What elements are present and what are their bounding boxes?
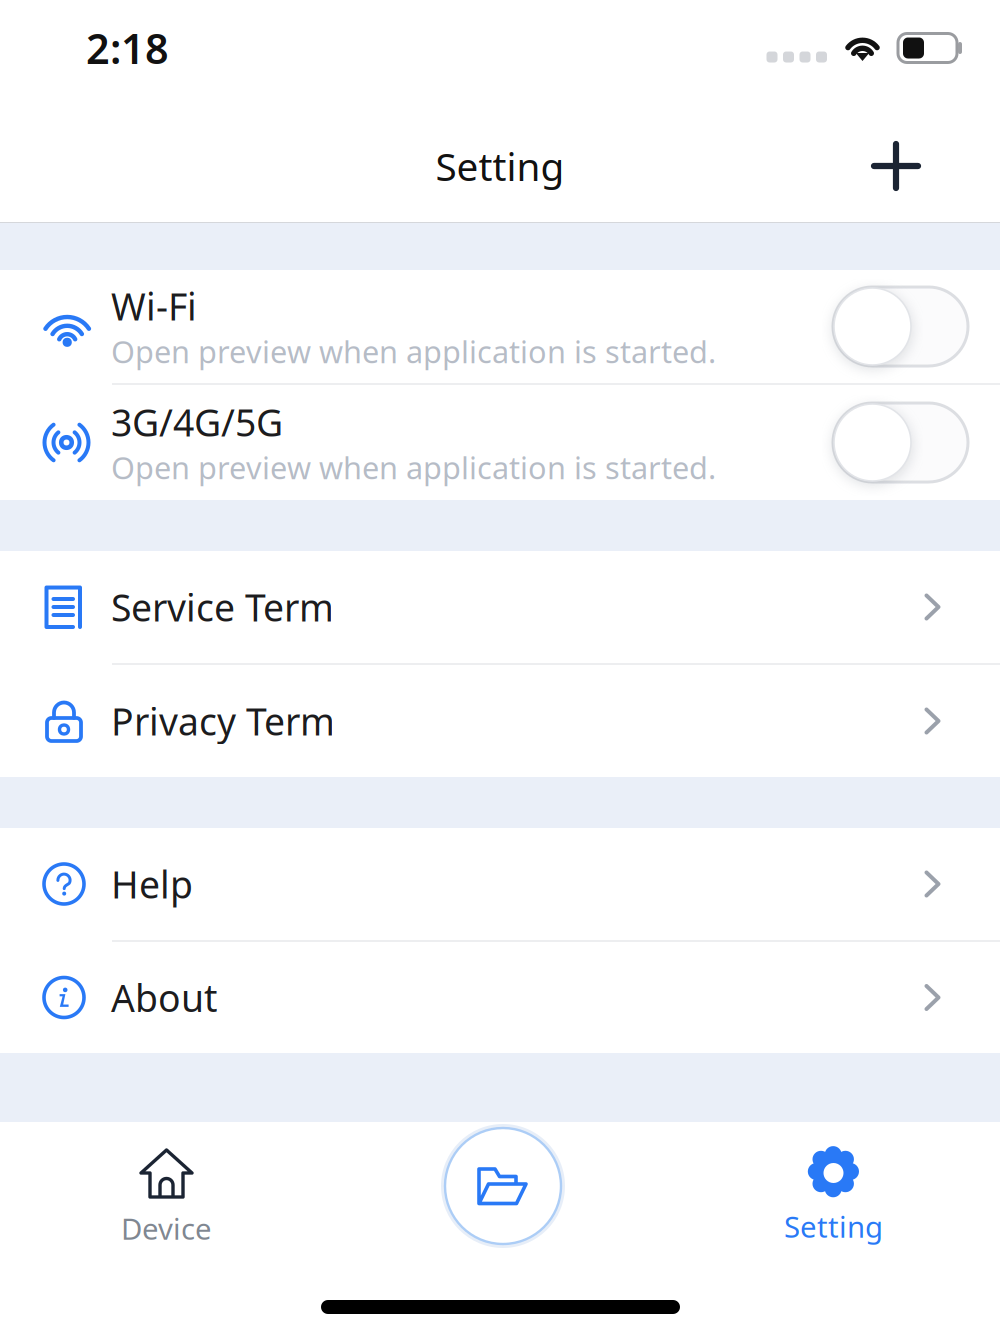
button[interactable]: Wi-Fi xyxy=(0,270,1000,383)
staticText: Device xyxy=(121,1209,212,1248)
staticText: Service Term xyxy=(111,582,334,632)
staticText: Setting xyxy=(784,1207,883,1246)
button[interactable]: 3G/4G/5G xyxy=(0,385,1000,500)
staticText: Privacy Term xyxy=(111,696,335,746)
button[interactable]: Add xyxy=(849,112,943,206)
button[interactable]: Service Term xyxy=(0,551,1000,663)
button[interactable]: About xyxy=(0,942,1000,1053)
button[interactable]: Help xyxy=(0,828,1000,940)
button[interactable]: Device xyxy=(0,1122,333,1334)
button[interactable]: Files xyxy=(441,1124,565,1248)
staticText: 3G/4G/5G xyxy=(111,397,283,447)
button[interactable]: Privacy Term xyxy=(0,665,1000,777)
button[interactable]: Setting xyxy=(667,1122,1000,1334)
staticText: About xyxy=(111,973,217,1022)
staticText: Wi-Fi xyxy=(111,281,197,331)
staticText: Open preview when application is started… xyxy=(111,447,716,488)
staticText: Help xyxy=(111,859,193,909)
staticText: Open preview when application is started… xyxy=(111,331,716,372)
staticText: 2:18 xyxy=(86,21,169,75)
staticText: Setting xyxy=(435,140,564,192)
